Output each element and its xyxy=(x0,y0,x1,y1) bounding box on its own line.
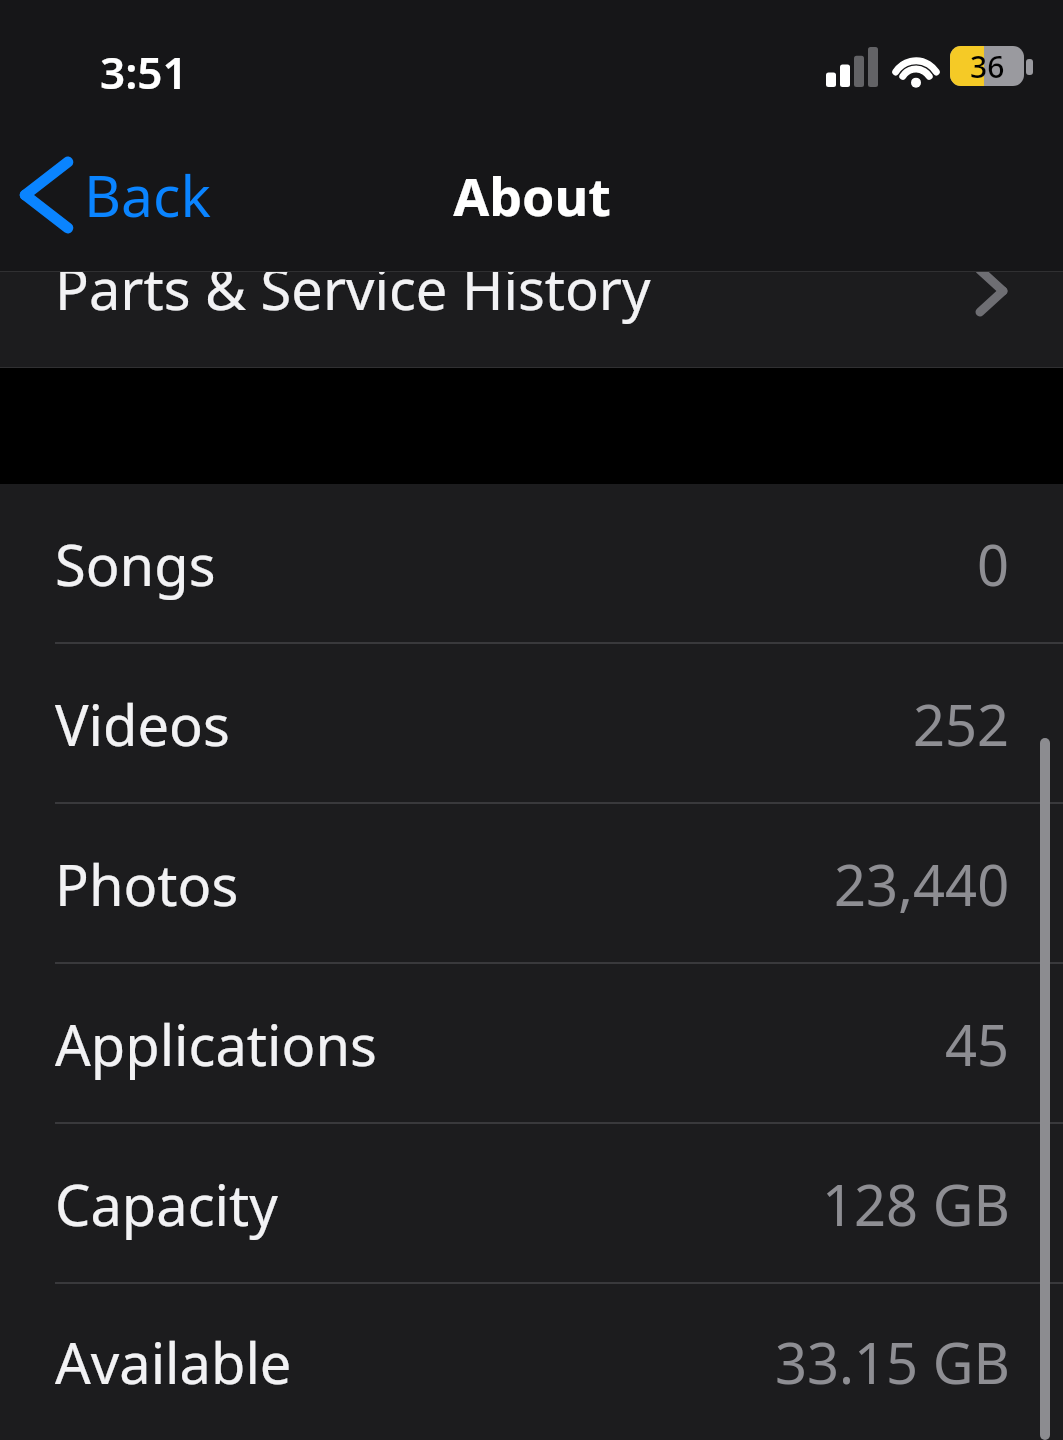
staticText: About xyxy=(453,160,611,231)
staticText: 33.15 GB xyxy=(775,1324,1010,1400)
button[interactable]: Back xyxy=(0,118,227,272)
staticText: Back xyxy=(84,156,211,234)
staticText: 0 xyxy=(977,526,1010,602)
button[interactable]: Videos xyxy=(0,644,1063,804)
button[interactable]: Available xyxy=(0,1284,1063,1440)
button[interactable]: Parts & Service History xyxy=(0,272,1063,368)
staticText: Applications xyxy=(55,1006,377,1082)
staticText: 252 xyxy=(913,686,1010,762)
staticText: 36 xyxy=(970,46,1005,86)
staticText: 23,440 xyxy=(834,846,1010,922)
staticText: Available xyxy=(55,1324,292,1400)
button[interactable]: Applications xyxy=(0,964,1063,1124)
staticText: 45 xyxy=(945,1006,1010,1082)
staticText: Songs xyxy=(55,526,216,602)
button[interactable]: Capacity xyxy=(0,1124,1063,1284)
staticText: Videos xyxy=(55,686,230,762)
staticText: Photos xyxy=(55,846,239,922)
staticText: 128 GB xyxy=(822,1166,1010,1242)
staticText: Parts & Service History xyxy=(55,250,651,326)
button[interactable]: Photos xyxy=(0,804,1063,964)
staticText: 3:51 xyxy=(100,42,188,102)
button[interactable]: Songs xyxy=(0,484,1063,644)
staticText: Capacity xyxy=(55,1166,278,1242)
